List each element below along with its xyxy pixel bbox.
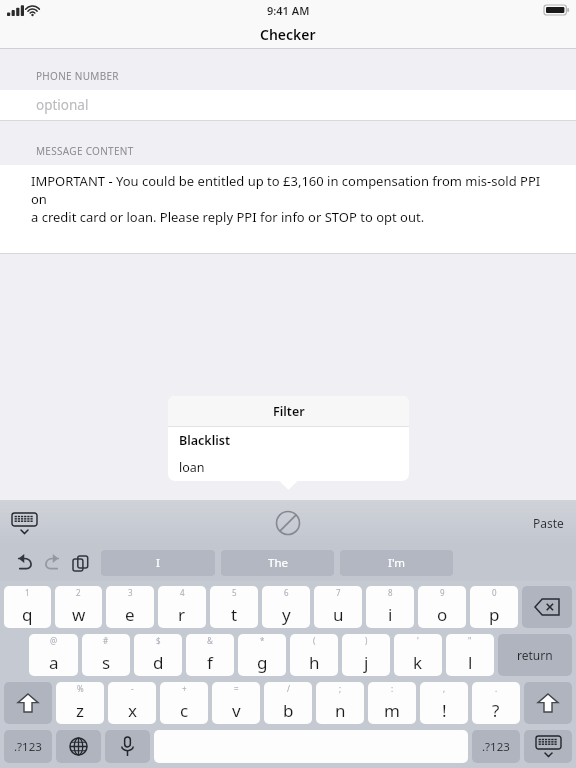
staticText: a — [49, 651, 59, 674]
button[interactable]: Dictate — [105, 730, 150, 763]
button[interactable]: Hide keyboard — [8, 507, 40, 539]
staticText: 8 — [388, 587, 393, 598]
button[interactable]: 8 — [366, 586, 414, 628]
staticText: ; — [339, 683, 342, 694]
button[interactable]: " — [446, 634, 494, 676]
staticText: Paste — [533, 515, 564, 531]
button[interactable]: 2 — [55, 586, 102, 628]
button[interactable]: . — [472, 682, 520, 724]
button[interactable]: return — [498, 634, 572, 676]
button[interactable]: ' — [394, 634, 442, 676]
staticText: k — [413, 651, 423, 674]
button[interactable]: 0 — [470, 586, 518, 628]
button[interactable]: @ — [29, 634, 78, 676]
button[interactable]: # — [82, 634, 130, 676]
staticText: loan — [179, 459, 205, 476]
staticText: $ — [156, 635, 161, 646]
button[interactable]: IMPORTANT - You could be entitled up to … — [0, 165, 576, 253]
staticText: c — [180, 699, 189, 722]
button[interactable]: 1 — [4, 586, 51, 628]
staticText: % — [77, 683, 84, 694]
staticText: b — [283, 699, 294, 722]
button[interactable]: = — [212, 682, 260, 724]
staticText: The — [268, 555, 288, 571]
staticText: ! — [442, 699, 447, 722]
staticText: * — [260, 635, 265, 646]
button[interactable]: ; — [316, 682, 364, 724]
staticText: 4 — [180, 587, 185, 598]
staticText: g — [257, 651, 268, 674]
button[interactable]: ) — [342, 634, 390, 676]
staticText: return — [517, 647, 553, 663]
staticText: a credit card or loan. Please reply PPI … — [31, 208, 425, 226]
staticText: f — [207, 651, 213, 674]
staticText: u — [333, 603, 344, 626]
staticText: ? — [492, 699, 500, 722]
staticText: t — [231, 603, 238, 626]
button[interactable]: 4 — [158, 586, 206, 628]
staticText: v — [232, 699, 241, 722]
button[interactable]: Copy — [66, 549, 94, 577]
button[interactable]: .?123 — [4, 730, 52, 763]
staticText: 9:41 AM — [267, 3, 310, 18]
staticText: e — [125, 603, 135, 626]
staticText: l — [468, 651, 473, 674]
button[interactable]: 7 — [314, 586, 362, 628]
staticText: . — [495, 683, 498, 694]
button[interactable]: .?123 — [472, 730, 520, 763]
staticText: y — [282, 603, 291, 626]
button[interactable]: loan — [168, 453, 409, 481]
button[interactable]: I'm — [340, 550, 453, 576]
staticText: 9 — [440, 587, 445, 598]
button[interactable]: Block — [272, 507, 304, 539]
staticText: 2 — [76, 587, 81, 598]
staticText: m — [384, 699, 400, 722]
button[interactable]: 3 — [106, 586, 154, 628]
button[interactable]: optional — [0, 90, 576, 120]
button[interactable]: % — [56, 682, 104, 724]
button[interactable]: * — [238, 634, 286, 676]
button[interactable]: The — [221, 550, 334, 576]
button[interactable]: Shift — [524, 682, 572, 724]
staticText: .?123 — [14, 739, 42, 755]
button[interactable]: + — [160, 682, 208, 724]
button[interactable]: , — [420, 682, 468, 724]
staticText: , — [443, 683, 446, 694]
button[interactable]: $ — [134, 634, 182, 676]
button[interactable]: 5 — [210, 586, 258, 628]
staticText: j — [364, 651, 369, 674]
button[interactable]: ( — [290, 634, 338, 676]
staticText: .?123 — [482, 739, 510, 755]
button[interactable]: Redo — [38, 549, 66, 577]
button[interactable]: Paste — [533, 515, 564, 531]
staticText: p — [489, 603, 500, 626]
staticText: + — [182, 683, 187, 694]
staticText: 1 — [25, 587, 30, 598]
button[interactable]: Shift — [4, 682, 52, 724]
button[interactable]: Change language — [56, 730, 101, 763]
staticText: x — [128, 699, 137, 722]
staticText: 0 — [492, 587, 497, 598]
button[interactable]: & — [186, 634, 234, 676]
staticText: z — [76, 699, 84, 722]
button[interactable]: Backspace — [522, 586, 572, 628]
staticText: PHONE NUMBER — [36, 69, 119, 83]
button[interactable]: Hide keyboard — [524, 730, 572, 763]
staticText: I — [156, 555, 160, 571]
staticText: ( — [313, 635, 316, 646]
staticText: IMPORTANT - You could be entitled up to … — [31, 172, 546, 208]
staticText: @ — [50, 635, 58, 646]
button[interactable]: / — [264, 682, 312, 724]
button[interactable]: Undo — [10, 549, 38, 577]
staticText: s — [102, 651, 111, 674]
button[interactable]: Blacklist — [168, 427, 409, 453]
staticText: n — [335, 699, 346, 722]
button[interactable]: : — [368, 682, 416, 724]
staticText: 6 — [284, 587, 289, 598]
button[interactable]: I — [101, 550, 215, 576]
button[interactable]: 6 — [262, 586, 310, 628]
button[interactable]: - — [108, 682, 156, 724]
staticText: & — [207, 635, 213, 646]
button[interactable]: 9 — [418, 586, 466, 628]
